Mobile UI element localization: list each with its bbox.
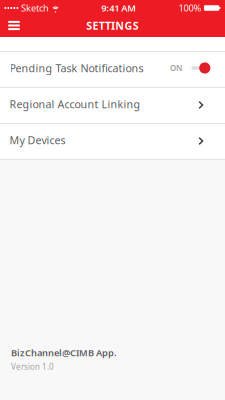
staticText: Regional Account Linking [10, 97, 141, 111]
button[interactable]: Menu [0, 15, 28, 35]
staticText: Version 1.0 [11, 361, 54, 372]
staticText: Sketch [21, 2, 49, 14]
staticText: BizChannel@CIMB App. [11, 346, 117, 359]
button[interactable]: Regional Account Linking [0, 88, 225, 124]
staticText: 100% [178, 2, 201, 14]
button[interactable]: Pending Task Notifications [0, 52, 225, 88]
button[interactable]: My Devices [0, 124, 225, 160]
staticText: My Devices [10, 133, 66, 147]
staticText: 9:41 AM [101, 2, 136, 14]
staticText: Pending Task Notifications [10, 61, 144, 75]
staticText: SETTINGS [86, 18, 139, 33]
staticText: ON [170, 63, 182, 73]
